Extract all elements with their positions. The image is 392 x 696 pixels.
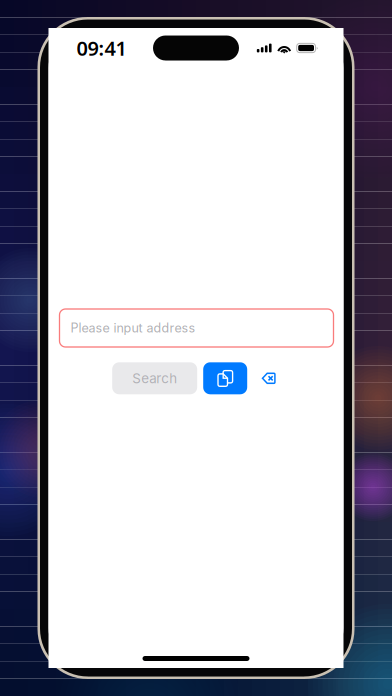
button[interactable]: Search	[112, 362, 197, 394]
staticText: 09:41	[76, 35, 126, 61]
staticText: Please input address	[70, 320, 195, 336]
button[interactable]: Paste	[203, 362, 247, 394]
button[interactable]: Clear	[253, 362, 284, 394]
staticText: Search	[132, 370, 177, 386]
